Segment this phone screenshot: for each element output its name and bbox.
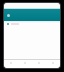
button[interactable]: Tab 1 <box>18 60 32 68</box>
button[interactable]: Profile <box>7 14 10 17</box>
button[interactable]: Tab 0 <box>4 60 18 68</box>
button[interactable]: Tab 2 <box>32 60 46 68</box>
button[interactable]: Tab 3 <box>46 60 60 68</box>
